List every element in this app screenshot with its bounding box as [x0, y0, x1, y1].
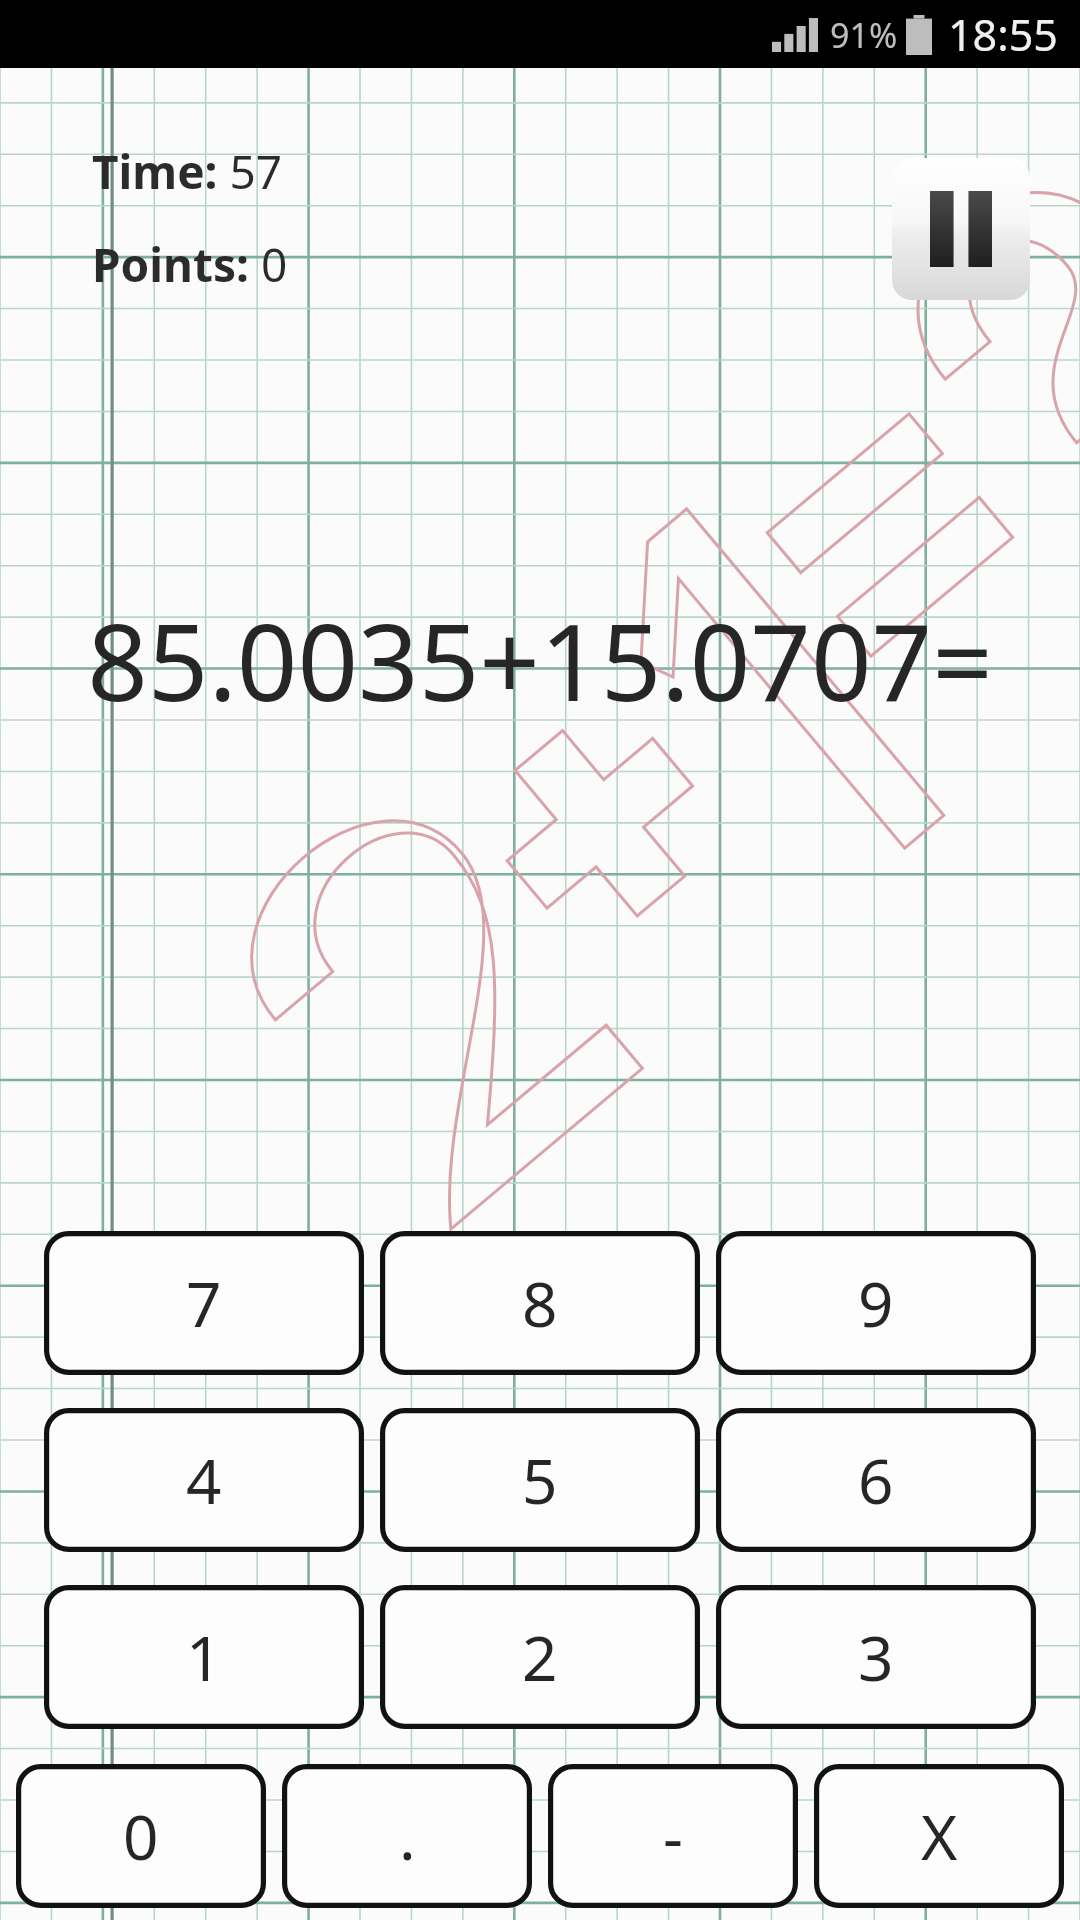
button[interactable]: 1	[44, 1585, 364, 1729]
staticText: 1	[186, 1615, 222, 1699]
button[interactable]: 5	[380, 1408, 700, 1552]
button[interactable]: 0	[16, 1764, 266, 1908]
staticText: X	[921, 1794, 958, 1878]
staticText: 4	[186, 1438, 222, 1522]
staticText: 7	[186, 1261, 222, 1345]
button[interactable]: 8	[380, 1231, 700, 1375]
button[interactable]: 9	[716, 1231, 1036, 1375]
staticText: 5	[522, 1438, 558, 1522]
button[interactable]: 6	[716, 1408, 1036, 1552]
button[interactable]: -	[548, 1764, 798, 1908]
staticText: 85.0035+15.0707=	[26, 588, 1054, 732]
staticText: 3	[858, 1615, 894, 1699]
staticText: 9	[858, 1261, 894, 1345]
staticText: 18:55	[948, 5, 1058, 64]
staticText: 8	[522, 1261, 558, 1345]
button[interactable]: Pause	[892, 158, 1030, 300]
staticText: 0	[123, 1794, 159, 1878]
button[interactable]: 7	[44, 1231, 364, 1375]
staticText: 91%	[830, 12, 898, 58]
button[interactable]: 3	[716, 1585, 1036, 1729]
button[interactable]: 2	[380, 1585, 700, 1729]
staticText: -	[663, 1794, 683, 1878]
staticText: Points: 0	[92, 233, 288, 296]
button[interactable]: .	[282, 1764, 532, 1908]
staticText: .	[399, 1794, 416, 1878]
staticText: Time: 57	[92, 140, 283, 203]
staticText: 6	[858, 1438, 894, 1522]
staticText: 2	[522, 1615, 558, 1699]
button[interactable]: 4	[44, 1408, 364, 1552]
button[interactable]: X	[814, 1764, 1064, 1908]
